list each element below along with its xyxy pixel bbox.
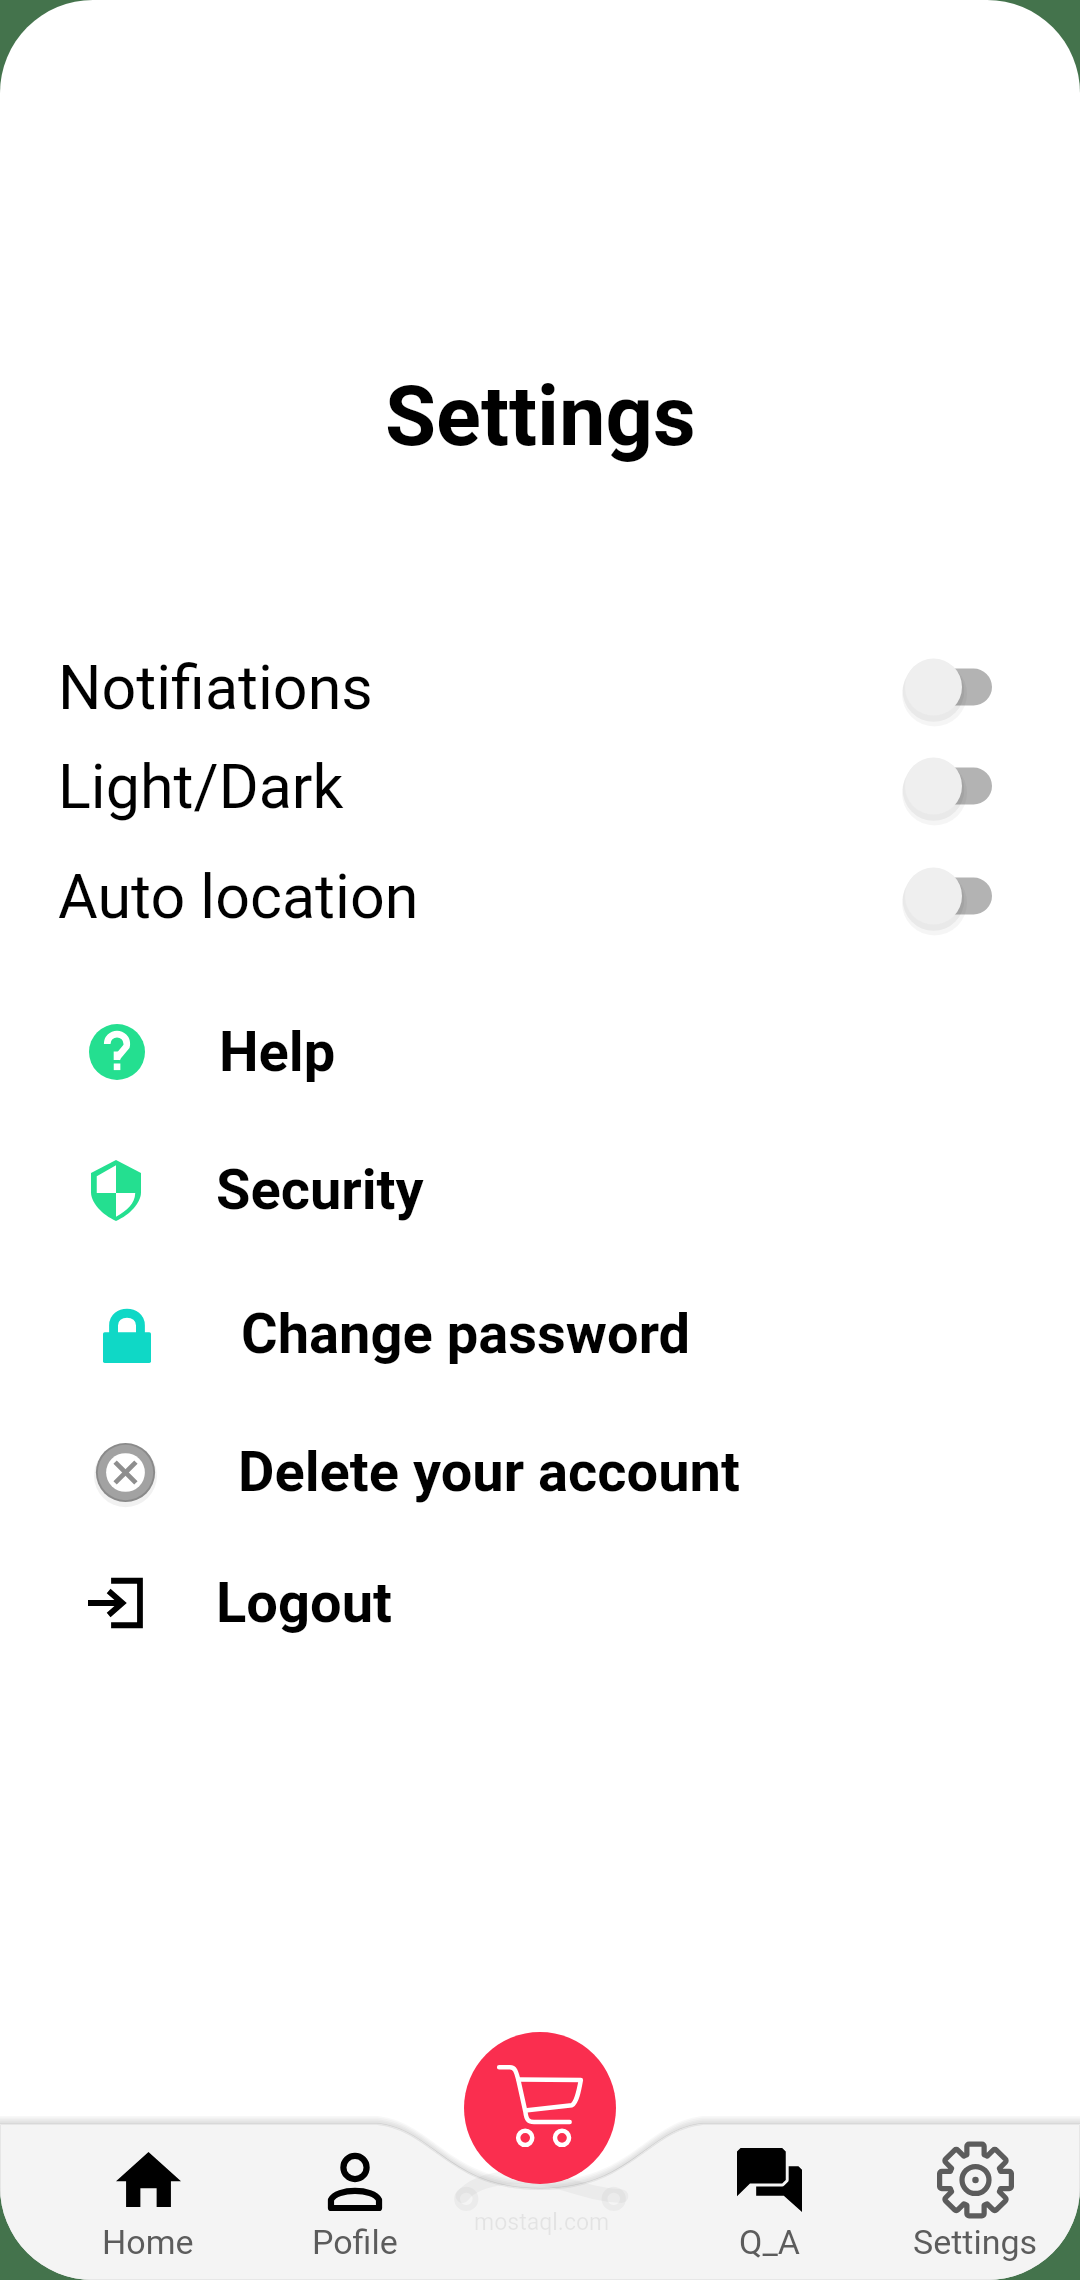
staticText: Home xyxy=(102,2222,194,2262)
staticText: Delete your account xyxy=(238,1439,740,1505)
staticText: Q_A xyxy=(739,2222,800,2262)
button[interactable]: Light/Dark switch, off xyxy=(904,755,992,817)
button[interactable]: Security xyxy=(0,1130,1080,1250)
staticText: Light/Dark xyxy=(58,751,344,822)
button[interactable]: Change password xyxy=(0,1274,1080,1394)
staticText: Pofile xyxy=(312,2222,398,2262)
staticText: Settings xyxy=(385,368,696,465)
staticText: Settings xyxy=(913,2222,1038,2262)
button[interactable]: Notifiations switch, off xyxy=(904,656,992,718)
staticText: Notifiations xyxy=(58,652,373,723)
button[interactable]: Settings xyxy=(875,2136,1075,2268)
button[interactable]: Auto location xyxy=(0,848,1080,944)
button[interactable]: Logout xyxy=(0,1543,1080,1663)
staticText: Security xyxy=(216,1157,424,1223)
button[interactable]: Cart xyxy=(464,2032,616,2184)
button[interactable]: Notifiations xyxy=(0,639,1080,735)
button[interactable]: Delete your account xyxy=(0,1412,1080,1532)
staticText: Auto location xyxy=(58,861,419,932)
button[interactable]: Auto location switch, off xyxy=(904,865,992,927)
staticText: mostaql.com xyxy=(474,2209,610,2236)
staticText: Change password xyxy=(241,1301,691,1367)
button[interactable]: Home xyxy=(48,2136,248,2268)
staticText: Logout xyxy=(216,1570,392,1636)
staticText: Help xyxy=(219,1019,336,1085)
button[interactable]: Light/Dark xyxy=(0,738,1080,834)
button[interactable]: Q_A xyxy=(669,2136,869,2268)
button[interactable]: Help xyxy=(0,992,1080,1112)
button[interactable]: Pofile xyxy=(255,2136,455,2268)
